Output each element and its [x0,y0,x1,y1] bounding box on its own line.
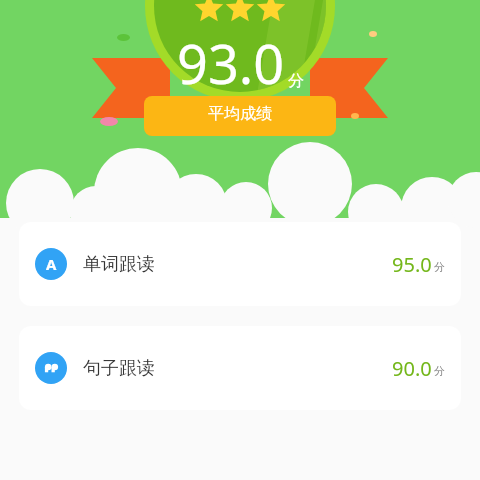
staticText: 分 [434,260,445,274]
staticText: 句子跟读 [83,357,155,380]
staticText: 90.0 [392,355,432,382]
button[interactable]: Sentence [19,326,461,410]
staticText: 单词跟读 [83,253,155,276]
button[interactable]: Word [19,222,461,306]
staticText: 93.0 [177,26,285,100]
staticText: 分 [434,364,445,378]
staticText: 分 [288,71,304,91]
other: Sentence [35,352,67,384]
staticText: 95.0 [392,251,432,278]
other: Word [35,248,67,280]
staticText: A [46,254,57,274]
staticText: 平均成绩 [208,104,272,124]
